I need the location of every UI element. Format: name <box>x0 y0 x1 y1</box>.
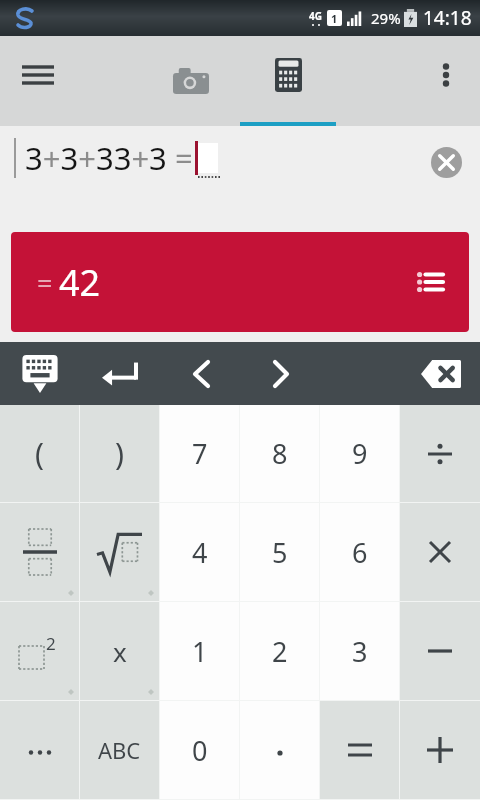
button[interactable]: Multiply <box>400 503 480 601</box>
staticText: ( <box>35 433 44 474</box>
button[interactable]: Decimal point <box>240 701 319 799</box>
button[interactable]: Power <box>0 602 79 700</box>
staticText: 5 <box>272 534 288 571</box>
button[interactable]: Square root <box>80 503 159 601</box>
staticText: 4 <box>192 534 208 571</box>
button[interactable]: ABC <box>80 701 159 799</box>
button[interactable]: Camera <box>167 56 215 104</box>
button[interactable]: ) <box>80 405 159 502</box>
staticText: ABC <box>98 735 141 765</box>
button[interactable]: Backspace <box>414 347 468 401</box>
button[interactable]: Divide <box>400 405 480 502</box>
button[interactable]: 9 <box>320 405 399 502</box>
button[interactable]: Hide keyboard <box>14 348 66 400</box>
staticText: 3+3+33+3 = <box>25 137 193 179</box>
button[interactable]: 4 <box>160 503 239 601</box>
button[interactable]: 0 <box>160 701 239 799</box>
button[interactable]: Enter <box>94 348 146 400</box>
button[interactable]: Move left <box>176 349 226 399</box>
button[interactable]: x <box>80 602 159 700</box>
button[interactable]: Calculator <box>264 58 312 122</box>
staticText: 4G <box>309 9 322 23</box>
button[interactable]: 7 <box>160 405 239 502</box>
staticText: 14:18 <box>423 5 472 31</box>
button[interactable]: 8 <box>240 405 319 502</box>
button[interactable]: ( <box>0 405 79 502</box>
staticText: 1 <box>192 633 208 670</box>
button[interactable]: Clear <box>426 142 466 182</box>
staticText: 2 <box>272 633 288 670</box>
staticText: 6 <box>352 534 368 571</box>
staticText: 8 <box>272 435 288 472</box>
button[interactable]: 1 <box>160 602 239 700</box>
button[interactable]: Move right <box>256 349 306 399</box>
button[interactable]: 6 <box>320 503 399 601</box>
button[interactable]: 2 <box>240 602 319 700</box>
staticText: 42 <box>59 258 101 307</box>
button[interactable]: Menu <box>14 51 62 99</box>
button[interactable]: 5 <box>240 503 319 601</box>
button[interactable]: Fraction <box>0 503 79 601</box>
staticText: 29% <box>371 8 401 28</box>
button[interactable]: 3 <box>320 602 399 700</box>
button[interactable]: = <box>11 232 469 332</box>
staticText: ) <box>115 433 124 474</box>
button[interactable]: Plus <box>400 701 480 799</box>
staticText: 0 <box>192 732 208 769</box>
staticText: 7 <box>192 435 208 472</box>
button[interactable]: Equals <box>320 701 399 799</box>
staticText: x <box>113 634 127 669</box>
button[interactable]: Solution steps <box>411 263 449 301</box>
button[interactable]: More <box>0 701 79 799</box>
staticText: 9 <box>352 435 368 472</box>
button[interactable]: More options <box>424 53 468 97</box>
button[interactable]: Minus <box>400 602 480 700</box>
staticText: 1 <box>331 11 338 26</box>
staticText: 3 <box>352 633 368 670</box>
staticText: 2 <box>46 632 56 655</box>
staticText: = <box>37 264 53 301</box>
